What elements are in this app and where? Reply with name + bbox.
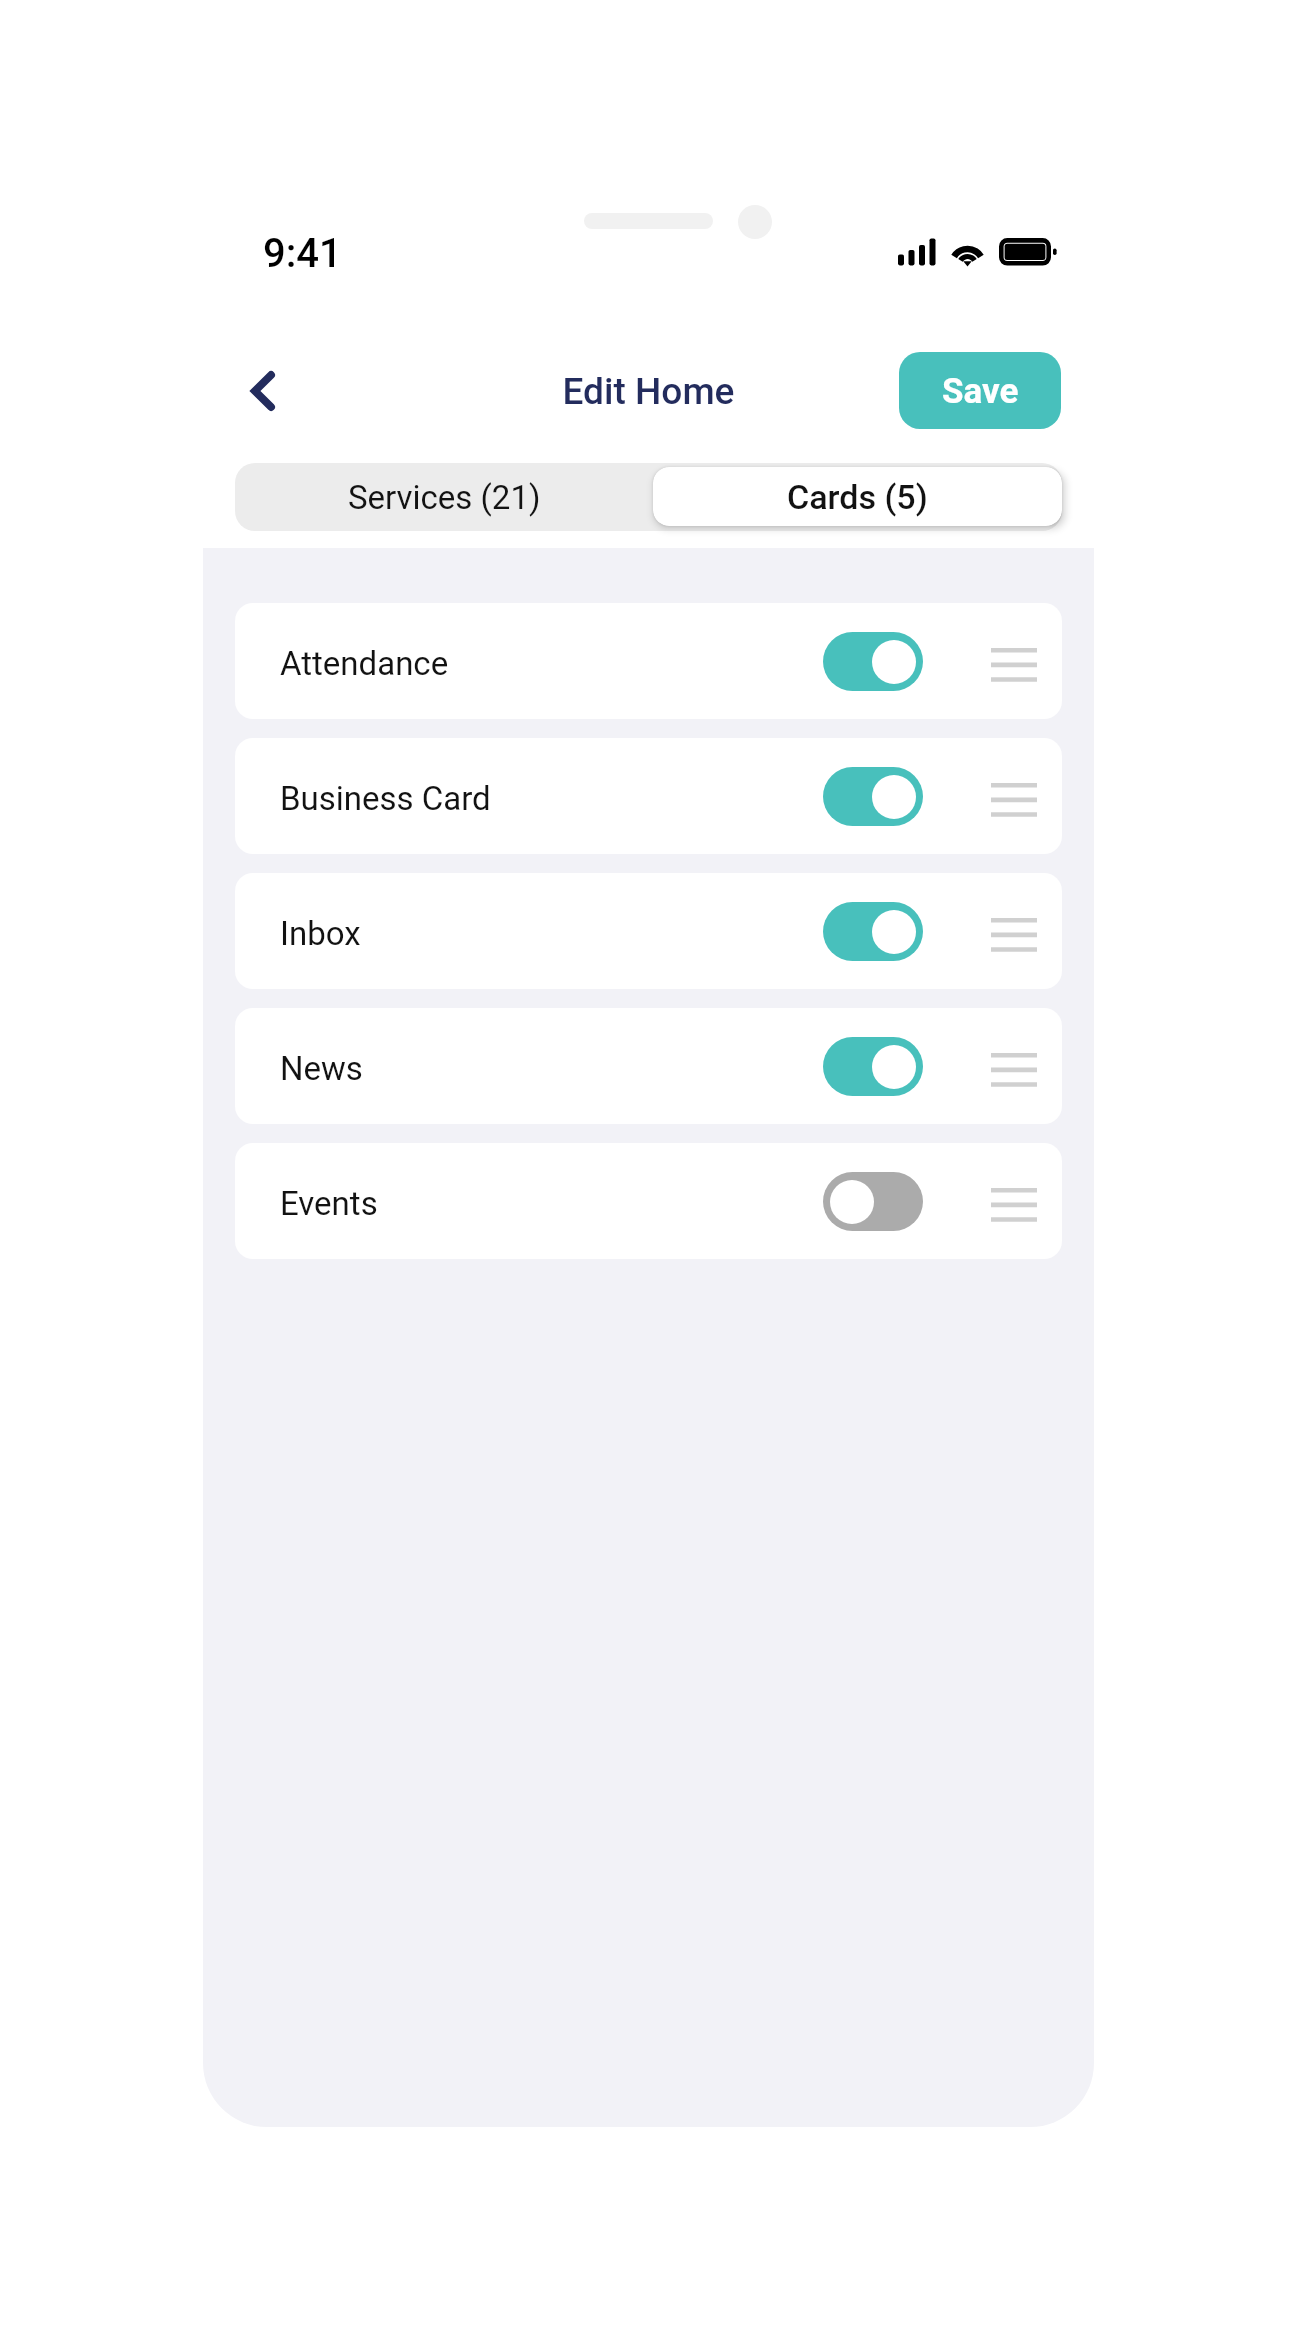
- button[interactable]: Attendance: [235, 603, 1062, 719]
- button[interactable]: News: [235, 1008, 1062, 1124]
- button[interactable]: Business Card toggle: [823, 767, 923, 826]
- button[interactable]: Reorder News: [979, 1031, 1049, 1101]
- staticText: News: [280, 1049, 363, 1088]
- button[interactable]: Reorder Events: [979, 1166, 1049, 1236]
- button[interactable]: Events toggle: [823, 1172, 923, 1231]
- button[interactable]: Save: [899, 352, 1061, 429]
- button[interactable]: Reorder Business Card: [979, 761, 1049, 831]
- staticText: Cards (5): [787, 477, 928, 517]
- staticText: Inbox: [280, 914, 361, 953]
- button[interactable]: Reorder Attendance: [979, 626, 1049, 696]
- button[interactable]: Inbox: [235, 873, 1062, 989]
- staticText: Services (21): [348, 478, 541, 517]
- staticText: 9:41: [263, 230, 342, 277]
- staticText: Edit Home: [0, 370, 1297, 413]
- staticText: Events: [280, 1184, 378, 1223]
- button[interactable]: Back: [220, 348, 306, 434]
- button[interactable]: Events: [235, 1143, 1062, 1259]
- button[interactable]: Inbox toggle: [823, 902, 923, 961]
- button[interactable]: News toggle: [823, 1037, 923, 1096]
- staticText: Business Card: [280, 779, 491, 818]
- button[interactable]: Cards (5): [653, 467, 1062, 526]
- button[interactable]: Services (21): [235, 463, 653, 531]
- button[interactable]: Reorder Inbox: [979, 896, 1049, 966]
- staticText: Attendance: [280, 644, 449, 683]
- staticText: Save: [942, 371, 1019, 412]
- button[interactable]: Business Card: [235, 738, 1062, 854]
- button[interactable]: Attendance toggle: [823, 632, 923, 691]
